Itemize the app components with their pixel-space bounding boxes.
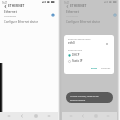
button[interactable] [0, 19, 58, 25]
staticText: Static IP [72, 59, 83, 63]
staticText: 9:41 [2, 1, 8, 5]
button[interactable]: Navigate up [2, 3, 8, 9]
staticText: SAVE [91, 66, 97, 69]
staticText: ETHERNET [8, 4, 25, 8]
button[interactable]: Back [79, 112, 87, 120]
staticText: DHCP [72, 53, 80, 57]
button[interactable]: DHCP [68, 53, 88, 57]
staticText: Ethernet device name [68, 38, 91, 41]
button[interactable]: Home [32, 112, 40, 120]
button[interactable]: Recents [5, 112, 13, 120]
button[interactable]: Back [18, 112, 26, 120]
staticText: eth0 [68, 41, 75, 45]
staticText: Connected [66, 14, 79, 17]
staticText: Configure Ethernet device [66, 20, 101, 24]
button[interactable]: Navigate up [64, 3, 70, 9]
staticText: Ethernet type [68, 49, 82, 52]
button[interactable]: Toggle Ethernet [112, 12, 118, 18]
staticText: An error occurred, configure the Etherne… [70, 95, 99, 101]
button[interactable]: Overview [45, 112, 53, 120]
staticText: ETHERNET [70, 4, 87, 8]
button[interactable]: SAVE [90, 65, 98, 70]
staticText: Ethernet [66, 10, 79, 14]
button[interactable] [0, 9, 58, 18]
button[interactable]: CANCEL [100, 65, 112, 70]
staticText: CANCEL [101, 66, 111, 69]
button[interactable]: Home [92, 112, 100, 120]
button[interactable]: Toggle Ethernet [50, 12, 56, 18]
staticText: 9:41 [64, 1, 70, 5]
staticText: Connected [4, 14, 17, 17]
button[interactable] [62, 9, 117, 18]
staticText: Configure Ethernet device [4, 20, 39, 24]
button[interactable]: Select device [105, 42, 109, 46]
staticText: Ethernet [4, 10, 17, 14]
button[interactable] [62, 19, 117, 25]
button[interactable]: Static IP [68, 59, 88, 63]
